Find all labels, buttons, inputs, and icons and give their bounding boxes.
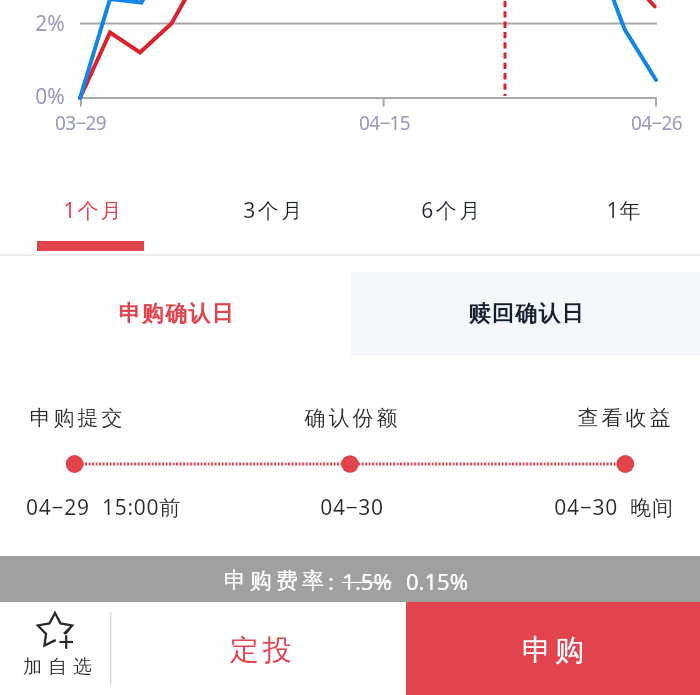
staticText: 04−26 xyxy=(631,110,682,136)
staticText: 03−29 xyxy=(55,110,106,136)
staticText: : xyxy=(328,566,334,596)
staticText: 1年 xyxy=(606,196,642,225)
button[interactable] xyxy=(350,155,525,254)
staticText: 赎回确认日 xyxy=(468,300,584,328)
button[interactable]: 加自选 xyxy=(0,602,110,695)
staticText: 6个月 xyxy=(421,196,483,225)
staticText: 查看收益 xyxy=(576,405,672,431)
staticText: 申购费率 xyxy=(222,567,326,595)
button[interactable] xyxy=(351,272,700,356)
staticText: 04−30 xyxy=(320,493,384,522)
staticText: 1个月 xyxy=(63,196,124,225)
staticText: 2% xyxy=(35,9,65,38)
staticText: 申购确认日 xyxy=(118,300,234,328)
staticText: 3个月 xyxy=(243,196,305,225)
staticText: 0% xyxy=(35,82,65,111)
staticText: 加自选 xyxy=(20,655,95,679)
staticText: 0.15% xyxy=(406,566,468,596)
staticText: 申购 xyxy=(520,632,586,669)
staticText: 确认份额 xyxy=(303,405,399,431)
button[interactable] xyxy=(0,155,175,254)
button[interactable]: 申购 xyxy=(406,602,700,695)
staticText: 04−15 xyxy=(359,110,410,136)
staticText: 申购提交 xyxy=(28,405,124,431)
staticText: 1.5% xyxy=(342,566,392,596)
button[interactable]: 定投 xyxy=(113,604,408,695)
button[interactable] xyxy=(525,155,700,254)
staticText: 04−29 15:00前 xyxy=(26,493,181,522)
staticText: 定投 xyxy=(228,632,294,669)
button[interactable] xyxy=(175,155,350,254)
button[interactable] xyxy=(0,256,350,372)
staticText: 04−30 晚间 xyxy=(554,493,674,522)
